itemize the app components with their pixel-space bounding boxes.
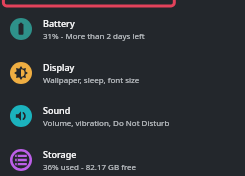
staticText: Display: [43, 61, 75, 73]
staticText: 36% used - 82.17 GB free: [43, 161, 137, 172]
staticText: Volume, vibration, Do Not Disturb: [43, 117, 170, 128]
button[interactable]: Sound: [0, 94, 245, 138]
staticText: Storage: [43, 148, 77, 160]
staticText: Wallpaper, sleep, font size: [43, 74, 140, 85]
staticText: Battery: [43, 17, 75, 29]
other: Battery: [10, 18, 32, 40]
button[interactable]: Battery: [0, 7, 245, 51]
other: Sound: [10, 105, 32, 127]
staticText: Sound: [43, 104, 71, 116]
other: Storage: [10, 149, 32, 171]
button[interactable]: Display: [0, 51, 245, 95]
other: Display: [10, 62, 32, 84]
button[interactable]: Storage: [0, 138, 245, 176]
staticText: 31% - More than 2 days left: [43, 30, 145, 41]
